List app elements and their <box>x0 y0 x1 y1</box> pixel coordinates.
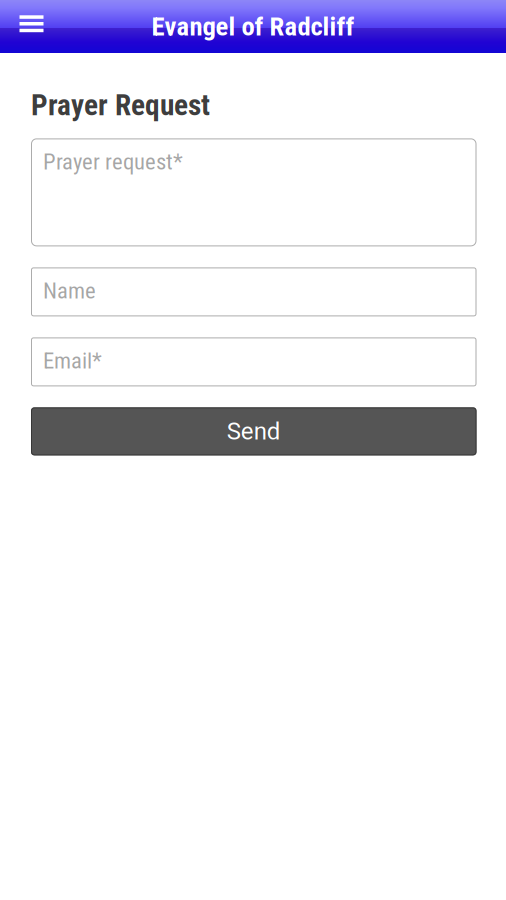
staticText: Send <box>227 417 281 445</box>
staticText: Evangel of Radcliff <box>151 11 354 42</box>
staticText: Prayer request* <box>43 148 183 175</box>
button[interactable]: Menu <box>0 0 61 53</box>
button[interactable]: Email* <box>31 337 476 386</box>
staticText: Name <box>43 277 96 304</box>
staticText: Email* <box>43 347 102 374</box>
button[interactable]: Name <box>31 267 476 316</box>
staticText: Prayer Request <box>31 88 210 122</box>
button[interactable]: Prayer request* <box>31 138 476 246</box>
button[interactable]: Send <box>31 407 476 455</box>
